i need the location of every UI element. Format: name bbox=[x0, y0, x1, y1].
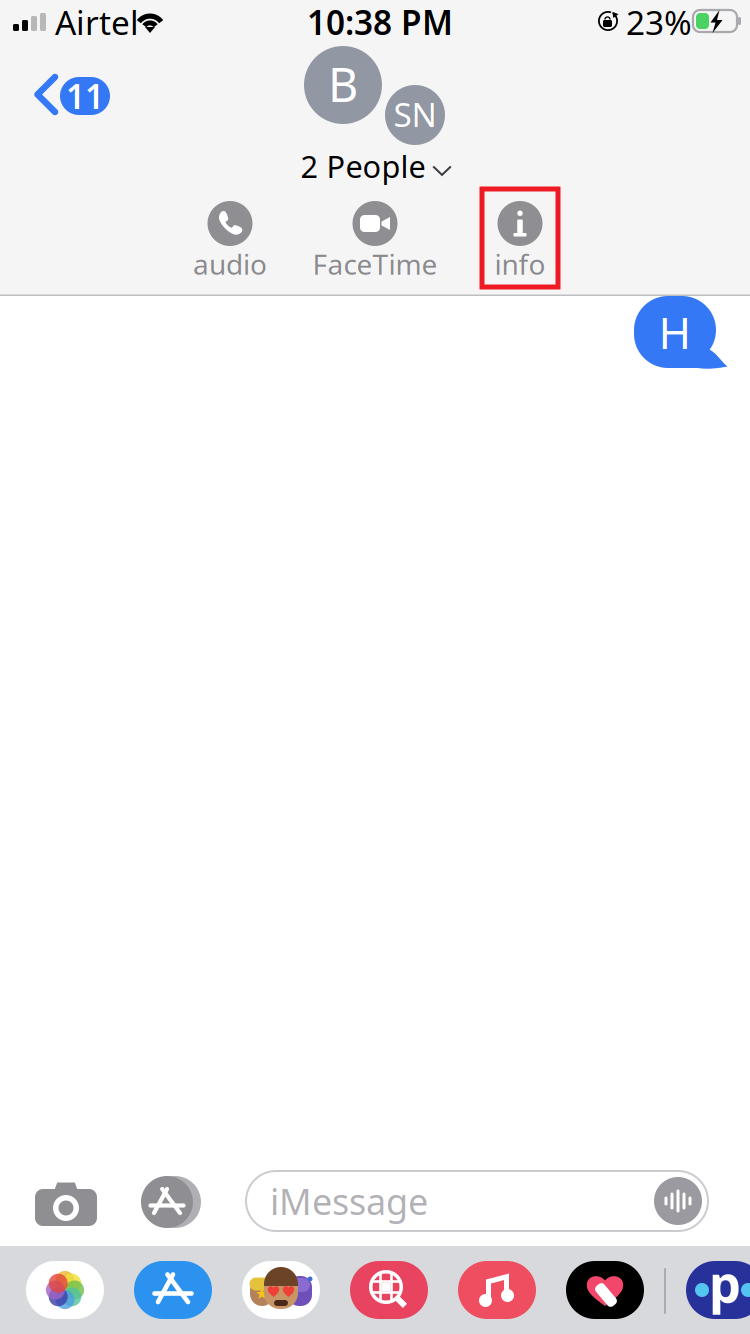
staticText: 10:38 PM bbox=[307, 0, 453, 44]
button[interactable]: audio bbox=[192, 189, 268, 287]
staticText: SN bbox=[393, 92, 436, 136]
staticText: p bbox=[709, 1249, 741, 1317]
button[interactable]: Memoji stickers bbox=[242, 1261, 320, 1319]
staticText: H bbox=[658, 303, 691, 361]
button[interactable]: App Store bbox=[134, 1261, 212, 1319]
button[interactable]: Image search bbox=[350, 1261, 428, 1319]
button[interactable]: Fitness bbox=[566, 1261, 644, 1319]
button[interactable]: People bbox=[686, 1261, 750, 1319]
button[interactable]: Back to 11 conversations bbox=[0, 44, 130, 130]
staticText: 2 People bbox=[300, 146, 425, 186]
button[interactable]: 2 People bbox=[0, 146, 750, 186]
button[interactable]: Music bbox=[458, 1261, 536, 1319]
button[interactable]: iMessage apps bbox=[141, 1176, 201, 1228]
staticText: Airtel bbox=[55, 0, 139, 44]
staticText: info bbox=[494, 245, 545, 283]
button[interactable]: FaceTime bbox=[337, 189, 413, 287]
button[interactable]: info bbox=[482, 189, 558, 287]
staticText: 11 bbox=[66, 74, 104, 118]
button[interactable]: Photos bbox=[26, 1261, 104, 1319]
staticText: audio bbox=[193, 245, 267, 283]
staticText: 23% bbox=[626, 0, 692, 44]
staticText: FaceTime bbox=[312, 245, 437, 283]
button[interactable]: Record audio message bbox=[654, 1177, 702, 1225]
button[interactable]: Camera bbox=[35, 1182, 97, 1226]
staticText: B bbox=[328, 53, 358, 115]
staticText: iMessage bbox=[270, 1177, 428, 1225]
